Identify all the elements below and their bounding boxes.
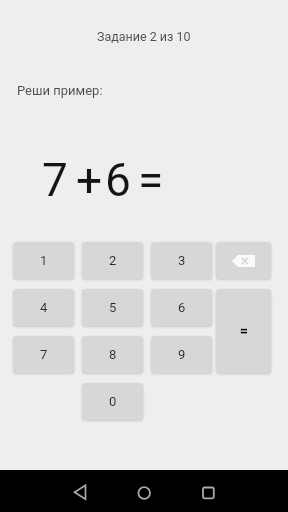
button[interactable]: 6 <box>151 289 212 326</box>
button[interactable]: 8 <box>82 336 143 373</box>
staticText: 6 <box>178 300 186 315</box>
button[interactable]: 2 <box>82 242 143 279</box>
button[interactable]: 1 <box>13 242 74 279</box>
staticText: 4 <box>40 300 48 315</box>
staticText: 7 <box>40 347 48 362</box>
staticText: + <box>76 153 103 207</box>
staticText: Реши пример: <box>17 83 103 98</box>
button[interactable]: 9 <box>151 336 212 373</box>
button[interactable]: 4 <box>13 289 74 326</box>
staticText: 7 <box>42 153 68 207</box>
staticText: 2 <box>109 253 117 268</box>
button[interactable] <box>196 480 220 504</box>
button[interactable]: 3 <box>151 242 212 279</box>
staticText: = <box>240 323 248 339</box>
button[interactable] <box>132 480 156 504</box>
staticText: Задание 2 из 10 <box>97 29 191 44</box>
button[interactable] <box>68 480 92 504</box>
staticText: 0 <box>109 394 117 409</box>
button[interactable]: 7 <box>13 336 74 373</box>
staticText: 1 <box>40 253 48 268</box>
staticText: 8 <box>109 347 117 362</box>
button[interactable]: = <box>216 289 271 373</box>
button[interactable] <box>216 242 271 279</box>
staticText: 5 <box>109 300 117 315</box>
staticText: 3 <box>178 253 186 268</box>
staticText: = <box>138 153 164 207</box>
staticText: 6 <box>105 153 131 207</box>
button[interactable]: 0 <box>82 383 143 420</box>
staticText: 9 <box>178 347 186 362</box>
button[interactable]: 5 <box>82 289 143 326</box>
